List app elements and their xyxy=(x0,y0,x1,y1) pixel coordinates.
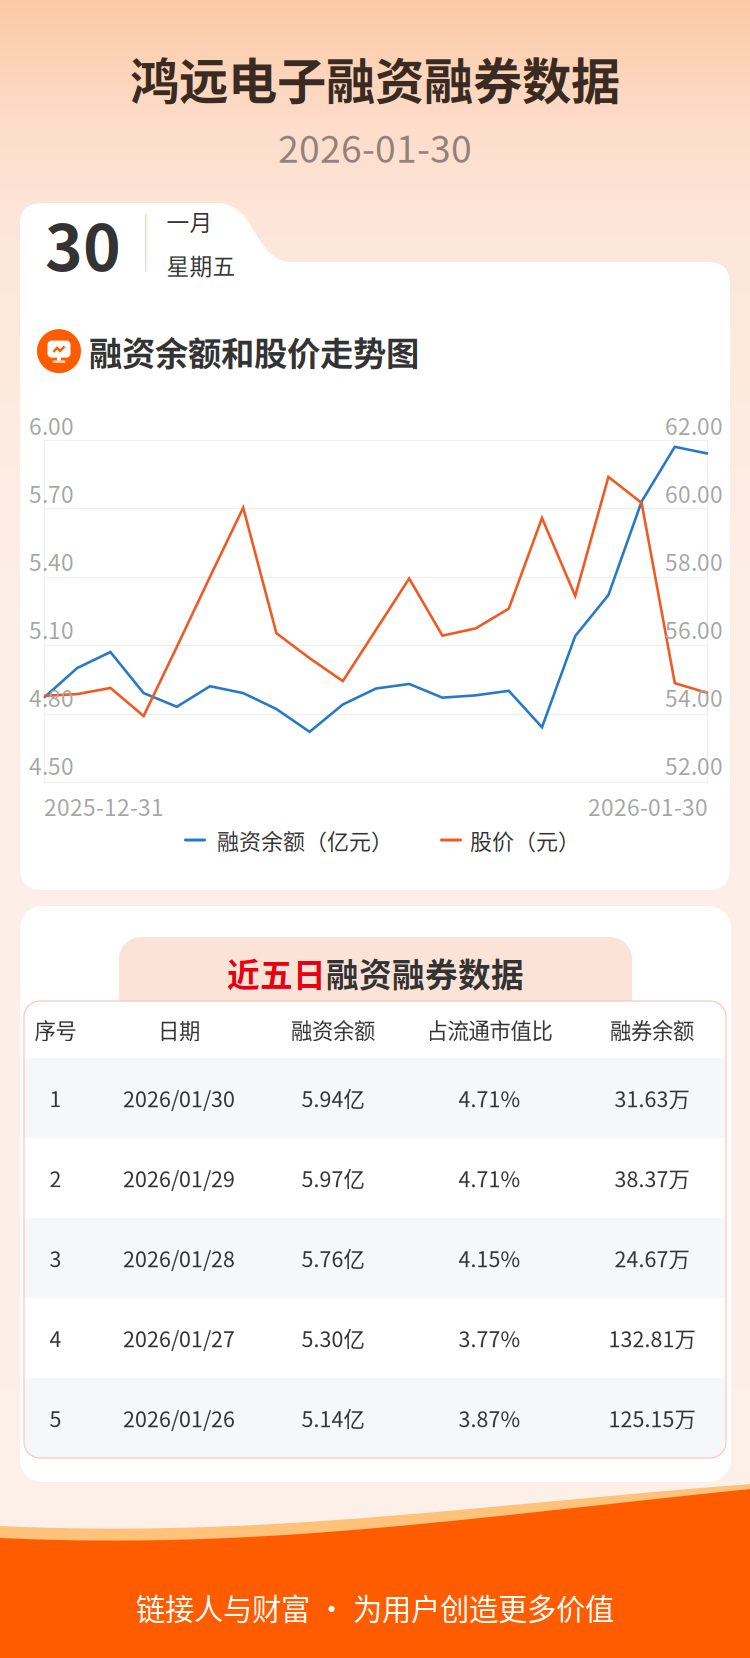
staticText: 3.87% xyxy=(458,1403,520,1433)
staticText: 38.37万 xyxy=(614,1163,689,1193)
staticText: 5 xyxy=(49,1403,61,1433)
staticText: 54.00 xyxy=(665,681,723,713)
staticText: 4.80 xyxy=(29,681,74,713)
staticText: 鸿远电子融资融券数据 xyxy=(130,42,620,113)
staticText: 4.71% xyxy=(458,1163,520,1193)
staticText: 52.00 xyxy=(665,749,723,781)
staticText: 融资融券数据 xyxy=(326,949,524,996)
staticText: 5.14亿 xyxy=(301,1403,364,1433)
staticText: 2026/01/30 xyxy=(123,1083,235,1113)
staticText: 24.67万 xyxy=(614,1243,689,1273)
staticText: 2026/01/29 xyxy=(123,1163,235,1193)
button[interactable]: 4 xyxy=(24,1298,726,1378)
staticText: 62.00 xyxy=(665,409,723,441)
staticText: 6.00 xyxy=(29,409,74,441)
staticText: 60.00 xyxy=(665,477,723,509)
staticText: 4.50 xyxy=(29,749,74,781)
staticText: 5.30亿 xyxy=(301,1323,364,1353)
staticText: 5.10 xyxy=(29,613,74,645)
staticText: 5.40 xyxy=(29,545,74,577)
staticText: 序号 xyxy=(34,1014,76,1045)
staticText: 31.63万 xyxy=(614,1083,689,1113)
staticText: 30 xyxy=(45,197,121,289)
staticText: 近五日 xyxy=(227,949,326,996)
staticText: 融资余额 xyxy=(291,1014,375,1045)
staticText: 占流通市值比 xyxy=(426,1014,552,1045)
staticText: 2026/01/26 xyxy=(123,1403,235,1433)
staticText: 4.71% xyxy=(458,1083,520,1113)
staticText: 5.97亿 xyxy=(301,1163,364,1193)
staticText: 4.15% xyxy=(458,1243,520,1273)
button[interactable]: 2 xyxy=(24,1138,726,1218)
staticText: 融资余额和股价走势图 xyxy=(89,327,419,375)
staticText: 3 xyxy=(49,1243,61,1273)
staticText: 56.00 xyxy=(665,613,723,645)
staticText: 2 xyxy=(49,1163,61,1193)
button[interactable]: 3 xyxy=(24,1218,726,1298)
staticText: 58.00 xyxy=(665,545,723,577)
staticText: 5.94亿 xyxy=(301,1083,364,1113)
staticText: 3.77% xyxy=(458,1323,520,1353)
staticText: 2026/01/27 xyxy=(123,1323,235,1353)
button[interactable]: 1 xyxy=(24,1058,726,1138)
staticText: 1 xyxy=(49,1083,61,1113)
staticText: 日期 xyxy=(158,1014,200,1045)
staticText: 融券余额 xyxy=(610,1014,694,1045)
staticText: 一月 xyxy=(166,205,212,237)
staticText: 4 xyxy=(49,1323,61,1353)
staticText: 2026-01-30 xyxy=(588,790,708,822)
staticText: 星期五 xyxy=(166,248,235,281)
staticText: 2026-01-30 xyxy=(278,119,472,173)
staticText: 132.81万 xyxy=(608,1323,695,1353)
staticText: 融资余额（亿元） xyxy=(217,824,393,856)
staticText: 125.15万 xyxy=(608,1403,695,1433)
staticText: 5.70 xyxy=(29,477,74,509)
button[interactable]: 5 xyxy=(24,1378,726,1458)
staticText: 2026/01/28 xyxy=(123,1243,235,1273)
staticText: 链接人与财富 · 为用户创造更多价值 xyxy=(136,1586,614,1628)
staticText: 股价（元） xyxy=(470,824,580,856)
staticText: 5.76亿 xyxy=(301,1243,364,1273)
staticText: 2025-12-31 xyxy=(44,790,164,822)
